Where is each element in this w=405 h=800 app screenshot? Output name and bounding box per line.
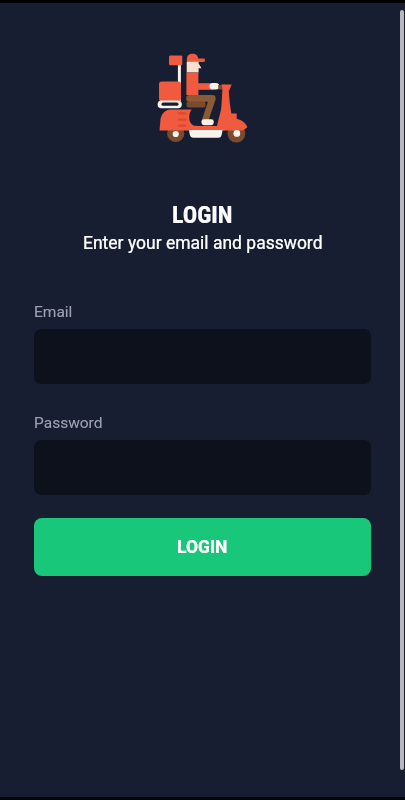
staticText: Enter your email and password bbox=[83, 233, 323, 254]
staticText: Password bbox=[34, 414, 103, 432]
staticText: Email bbox=[34, 303, 73, 321]
staticText: LOGIN bbox=[172, 201, 233, 229]
button[interactable]: LOGIN bbox=[34, 518, 371, 576]
staticText: LOGIN bbox=[177, 537, 228, 558]
